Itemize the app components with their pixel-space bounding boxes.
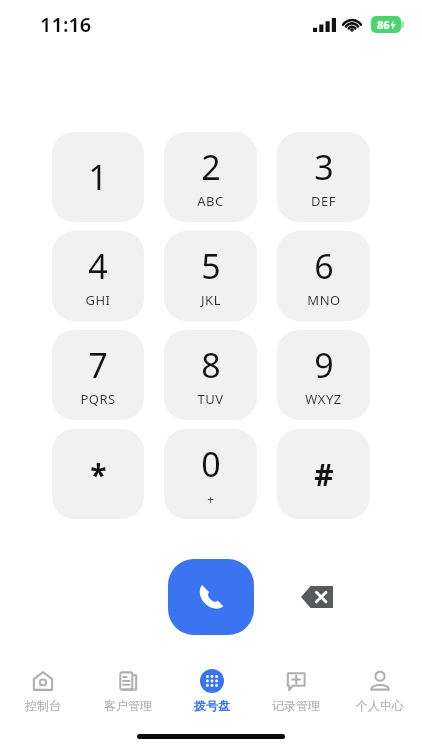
staticText: GHI xyxy=(85,291,111,309)
button[interactable]: 4 xyxy=(52,231,144,321)
staticText: 客户管理 xyxy=(104,698,152,713)
button[interactable]: * xyxy=(52,429,144,519)
staticText: 记录管理 xyxy=(272,698,320,713)
staticText: WXYZ xyxy=(305,390,342,408)
button[interactable]: 5 xyxy=(164,231,257,321)
button[interactable]: 0 xyxy=(164,429,257,519)
button[interactable]: 1 xyxy=(52,132,144,222)
staticText: # xyxy=(314,454,334,495)
button[interactable]: 控制台 xyxy=(0,660,85,722)
staticText: + xyxy=(207,491,215,507)
button[interactable]: 拨号盘 xyxy=(170,660,254,722)
button[interactable]: 6 xyxy=(277,231,370,321)
staticText: DEF xyxy=(311,192,336,210)
staticText: 8 xyxy=(201,342,221,388)
button[interactable]: 记录管理 xyxy=(254,660,338,722)
staticText: 3 xyxy=(314,144,334,190)
button[interactable]: Backspace xyxy=(296,582,338,612)
button[interactable]: 9 xyxy=(277,330,370,420)
staticText: * xyxy=(90,454,107,495)
staticText: 拨号盘 xyxy=(194,698,230,713)
staticText: 11:16 xyxy=(40,11,92,38)
staticText: 1 xyxy=(88,154,108,200)
staticText: JKL xyxy=(201,291,221,309)
staticText: 86 xyxy=(377,17,390,32)
staticText: 5 xyxy=(201,243,221,289)
staticText: 4 xyxy=(88,243,108,289)
button[interactable]: 7 xyxy=(52,330,144,420)
button[interactable]: 个人中心 xyxy=(338,660,422,722)
staticText: 6 xyxy=(314,243,334,289)
staticText: 0 xyxy=(201,441,221,487)
button[interactable]: # xyxy=(277,429,370,519)
button[interactable]: Call xyxy=(168,559,254,635)
button[interactable]: 客户管理 xyxy=(85,660,170,722)
button[interactable]: 8 xyxy=(164,330,257,420)
staticText: 9 xyxy=(314,342,334,388)
button[interactable]: 3 xyxy=(277,132,370,222)
staticText: 2 xyxy=(201,144,221,190)
staticText: 个人中心 xyxy=(356,698,404,713)
staticText: 控制台 xyxy=(25,698,61,713)
staticText: 7 xyxy=(88,342,108,388)
button[interactable]: 2 xyxy=(164,132,257,222)
staticText: TUV xyxy=(197,390,224,408)
staticText: PQRS xyxy=(80,390,116,408)
staticText: MNO xyxy=(307,291,341,309)
staticText: ABC xyxy=(197,192,224,210)
